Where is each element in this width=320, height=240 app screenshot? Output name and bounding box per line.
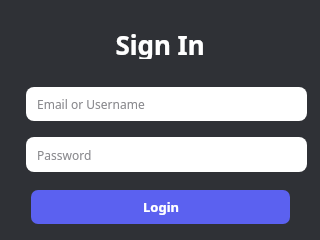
staticText: Sign In (115, 27, 205, 59)
staticText: Login (143, 198, 179, 216)
button[interactable]: Login (31, 190, 290, 224)
staticText: Email or Username (37, 96, 145, 112)
button[interactable]: Password (26, 137, 307, 172)
staticText: Password (37, 147, 92, 163)
button[interactable]: Email or Username (26, 87, 307, 121)
